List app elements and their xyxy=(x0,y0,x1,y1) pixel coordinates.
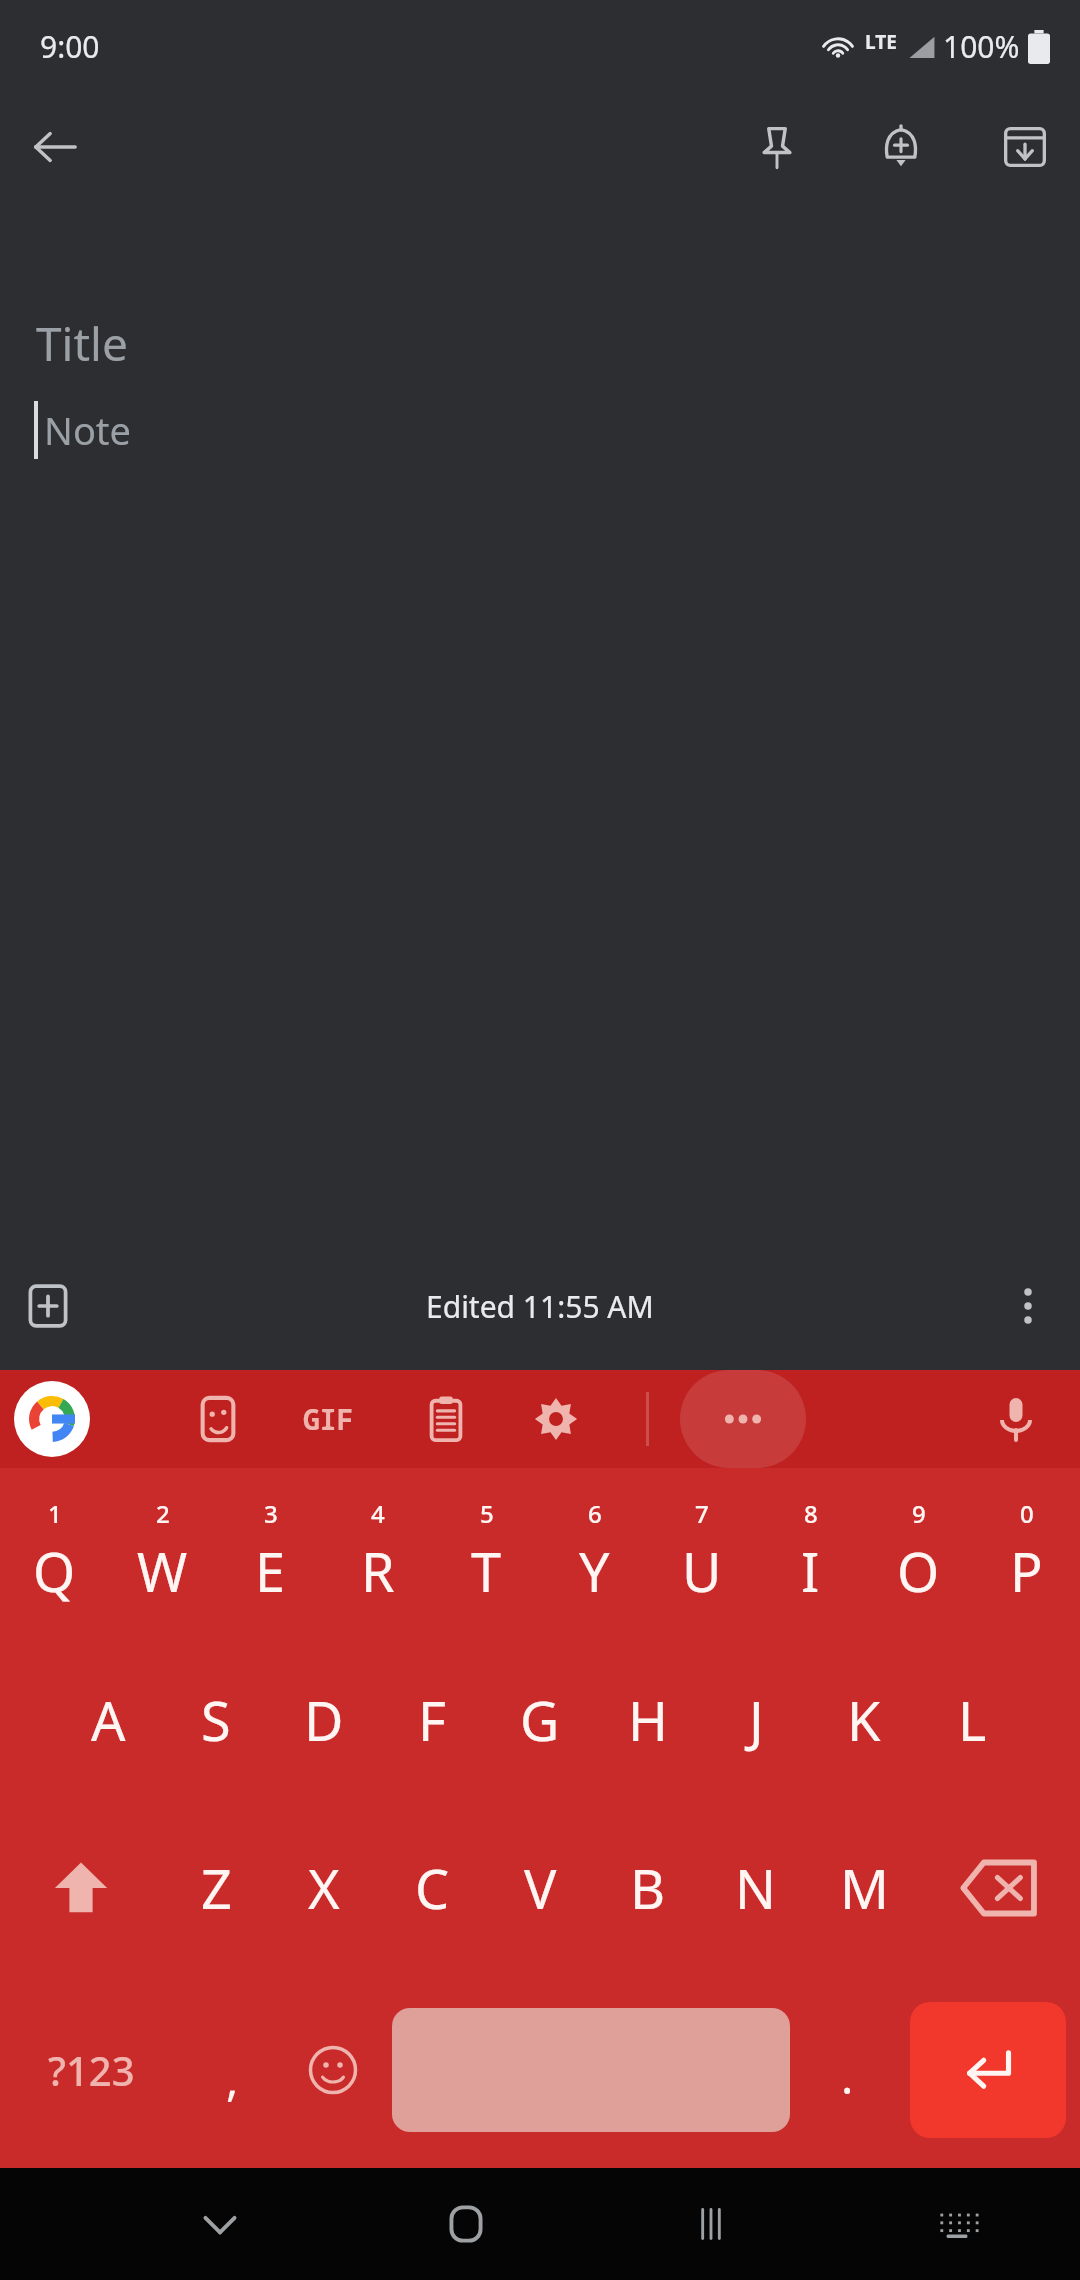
staticText: G xyxy=(520,1683,560,1757)
staticText: GIF xyxy=(303,1400,354,1438)
button[interactable]: K xyxy=(810,1636,918,1804)
button[interactable]: Settings xyxy=(510,1373,602,1465)
staticText: 9:00 xyxy=(40,26,100,67)
staticText: X xyxy=(308,1851,340,1925)
staticText: T xyxy=(471,1534,502,1608)
button[interactable]: 2 xyxy=(108,1468,216,1636)
staticText: A xyxy=(91,1683,126,1757)
button[interactable]: 8 xyxy=(756,1468,864,1636)
staticText: C xyxy=(415,1851,450,1925)
staticText: Edited 11:55 AM xyxy=(426,1286,654,1327)
button[interactable]: 1 xyxy=(0,1468,108,1636)
button[interactable]: Shift xyxy=(0,1804,162,1972)
button[interactable]: 4 xyxy=(324,1468,432,1636)
button[interactable]: F xyxy=(378,1636,486,1804)
staticText: I xyxy=(801,1534,820,1608)
button[interactable]: Google search xyxy=(14,1381,90,1457)
staticText: 6 xyxy=(588,1497,602,1530)
button[interactable]: More options xyxy=(990,1268,1066,1344)
button[interactable]: 0 xyxy=(972,1468,1080,1636)
staticText: N xyxy=(735,1851,777,1925)
staticText: Y xyxy=(579,1534,610,1608)
button[interactable]: More keyboard options xyxy=(680,1370,806,1468)
staticText: H xyxy=(628,1683,669,1757)
button[interactable]: S xyxy=(162,1636,270,1804)
staticText: W xyxy=(137,1534,188,1608)
button[interactable]: B xyxy=(594,1804,702,1972)
staticText: P xyxy=(1010,1534,1043,1608)
button[interactable]: C xyxy=(378,1804,486,1972)
staticText: ?123 xyxy=(48,2043,135,2097)
button[interactable]: Space xyxy=(392,2008,790,2132)
button[interactable]: Archive xyxy=(984,106,1066,188)
staticText: M xyxy=(840,1851,889,1925)
staticText: F xyxy=(418,1683,447,1757)
staticText: 8 xyxy=(804,1497,818,1530)
button[interactable]: Switch keyboard xyxy=(882,2168,1032,2280)
staticText: D xyxy=(304,1683,344,1757)
staticText: 7 xyxy=(695,1497,709,1530)
staticText: Title xyxy=(36,312,128,375)
button[interactable]: 5 xyxy=(432,1468,540,1636)
staticText: 4 xyxy=(371,1497,385,1530)
button[interactable]: GIF xyxy=(282,1373,374,1465)
button[interactable]: Add reminder xyxy=(860,106,942,188)
staticText: S xyxy=(201,1683,231,1757)
staticText: 2 xyxy=(156,1497,170,1530)
staticText: Note xyxy=(44,404,132,456)
button[interactable]: Enter xyxy=(910,2002,1066,2138)
staticText: 100% xyxy=(943,26,1020,67)
button[interactable]: Stickers xyxy=(172,1373,264,1465)
button[interactable]: , xyxy=(183,1972,281,2168)
button[interactable]: M xyxy=(810,1804,918,1972)
button[interactable]: Home xyxy=(391,2168,541,2280)
button[interactable]: Back xyxy=(14,106,96,188)
button[interactable]: Add xyxy=(10,1268,86,1344)
staticText: R xyxy=(361,1534,395,1608)
button[interactable]: Voice input xyxy=(970,1373,1062,1465)
button[interactable]: G xyxy=(486,1636,594,1804)
button[interactable]: Backspace xyxy=(918,1804,1080,1972)
button[interactable]: N xyxy=(702,1804,810,1972)
button[interactable]: Z xyxy=(162,1804,270,1972)
button[interactable]: 9 xyxy=(864,1468,972,1636)
button[interactable]: 6 xyxy=(540,1468,648,1636)
staticText: 1 xyxy=(48,1497,62,1530)
button[interactable]: Clipboard xyxy=(400,1373,492,1465)
button[interactable]: Pin xyxy=(736,106,818,188)
staticText: L xyxy=(958,1683,987,1757)
button[interactable]: Emoji xyxy=(281,1972,384,2168)
button[interactable]: . xyxy=(798,1972,896,2168)
staticText: E xyxy=(255,1534,286,1608)
button[interactable]: Hide keyboard xyxy=(145,2168,295,2280)
staticText: . xyxy=(841,2045,854,2108)
button[interactable]: A xyxy=(54,1636,162,1804)
staticText: 3 xyxy=(264,1497,278,1530)
button[interactable]: Title xyxy=(0,202,1080,1242)
staticText: O xyxy=(897,1534,940,1608)
staticText: U xyxy=(682,1534,722,1608)
button[interactable]: 7 xyxy=(648,1468,756,1636)
staticText: V xyxy=(524,1851,557,1925)
button[interactable]: Recents xyxy=(636,2168,786,2280)
staticText: 9 xyxy=(912,1497,926,1530)
staticText: 0 xyxy=(1020,1497,1034,1530)
button[interactable]: V xyxy=(486,1804,594,1972)
staticText: Q xyxy=(33,1534,76,1608)
staticText: Z xyxy=(201,1851,232,1925)
button[interactable]: X xyxy=(270,1804,378,1972)
button[interactable]: J xyxy=(702,1636,810,1804)
button[interactable]: D xyxy=(270,1636,378,1804)
staticText: J xyxy=(749,1683,764,1757)
staticText: 5 xyxy=(480,1497,494,1530)
button[interactable]: 3 xyxy=(216,1468,324,1636)
staticText: B xyxy=(630,1851,666,1925)
staticText: , xyxy=(226,2047,239,2110)
button[interactable]: H xyxy=(594,1636,702,1804)
staticText: K xyxy=(847,1683,881,1757)
button[interactable]: ?123 xyxy=(0,1972,183,2168)
staticText: LTE xyxy=(865,29,897,55)
button[interactable]: L xyxy=(918,1636,1026,1804)
